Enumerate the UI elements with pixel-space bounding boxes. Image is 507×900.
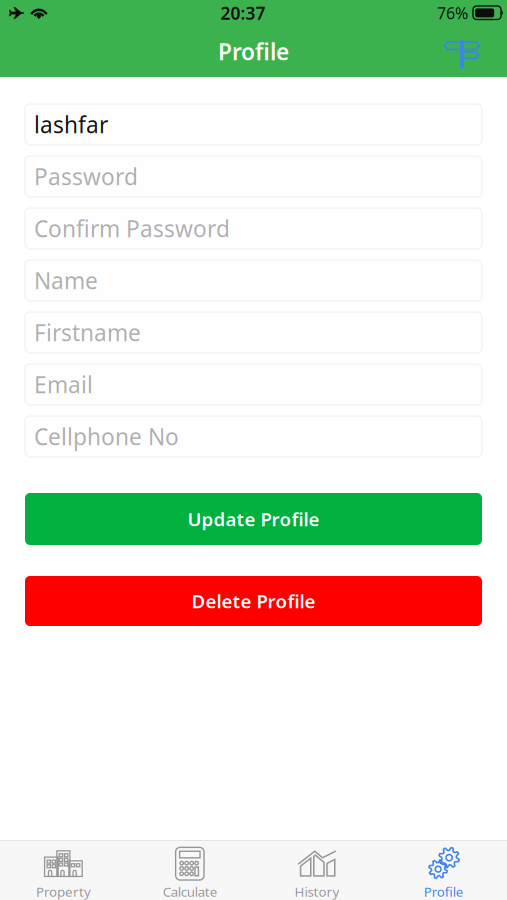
staticText: 76% [437,2,468,24]
staticText: Update Profile [187,507,319,531]
staticText: Cellphone No [34,421,179,451]
button[interactable]: Property [0,841,127,900]
button[interactable]: Calculate [127,841,254,900]
staticText: Email [34,369,93,399]
button[interactable]: Delete Profile [25,576,482,626]
staticText: lashfar [34,109,108,139]
staticText: Firstname [34,317,141,347]
staticText: Profile [218,36,289,66]
staticText: Calculate [163,883,218,900]
staticText: Profile [424,883,464,900]
staticText: 20:37 [220,1,265,24]
button[interactable]: Profile [380,841,507,900]
button[interactable]: Directions [444,32,507,70]
staticText: Delete Profile [191,589,315,613]
button[interactable]: History [253,841,380,900]
staticText: History [294,883,339,900]
staticText: Property [36,883,91,900]
staticText: Name [34,265,98,295]
staticText: Password [34,161,138,191]
button[interactable]: Update Profile [25,493,482,545]
staticText: Confirm Password [34,213,230,243]
